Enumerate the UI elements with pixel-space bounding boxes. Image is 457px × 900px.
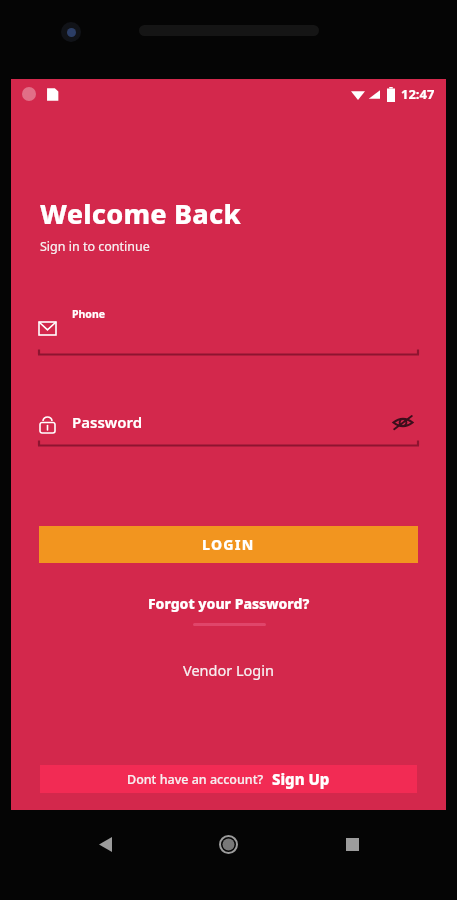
button[interactable]: Show password (392, 414, 414, 431)
staticText: Password (72, 412, 143, 432)
other: Phone (39, 322, 56, 335)
staticText: Vendor Login (183, 660, 274, 680)
button[interactable]: Vendor Login (169, 656, 288, 684)
staticText: 12:47 (401, 85, 435, 103)
staticText: LOGIN (202, 535, 255, 554)
staticText: Sign in to continue (40, 238, 150, 255)
button[interactable]: LOGIN (39, 526, 418, 563)
staticText: Sign Up (272, 769, 330, 789)
button[interactable]: Phone (38, 301, 419, 359)
other: Password (40, 416, 55, 433)
button[interactable]: Dont have an account? (40, 765, 417, 793)
staticText: Welcome Back (40, 195, 241, 232)
staticText: Phone (72, 307, 106, 321)
staticText: Forgot your Password? (148, 594, 310, 613)
button[interactable]: Recents (335, 827, 369, 861)
button[interactable]: Back (88, 827, 122, 861)
button[interactable]: Forgot your Password? (138, 592, 320, 628)
staticText: Dont have an account? (127, 771, 264, 788)
button[interactable]: Password (38, 406, 419, 450)
button[interactable]: Home (211, 827, 245, 861)
